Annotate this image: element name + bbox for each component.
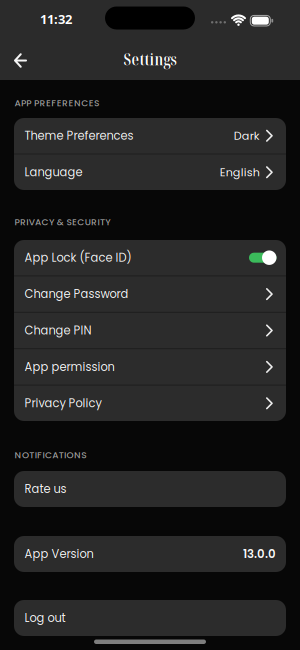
button[interactable]: Theme Preferences	[14, 118, 286, 153]
staticText: English	[220, 164, 260, 180]
staticText: Rate us	[24, 481, 66, 497]
staticText: Settings	[123, 49, 176, 70]
button[interactable]: Change PIN	[14, 313, 286, 348]
staticText: NOTIFICATIONS	[14, 449, 86, 461]
staticText: App Version	[24, 546, 93, 562]
staticText: App permission	[24, 359, 114, 375]
staticText: Dark	[234, 128, 260, 144]
button[interactable]: App Version	[14, 536, 286, 572]
button[interactable]: Back	[9, 48, 32, 73]
staticText: Theme Preferences	[24, 128, 133, 144]
staticText: Change PIN	[24, 322, 91, 339]
button[interactable]: Language	[14, 154, 286, 190]
button[interactable]: App permission	[14, 349, 286, 385]
staticText: APP PREFERENCES	[14, 97, 99, 109]
staticText: Change Password	[24, 286, 128, 302]
button[interactable]: Rate us	[14, 471, 286, 507]
staticText: PRIVACY & SECURITY	[14, 216, 110, 228]
button[interactable]: Change Password	[14, 276, 286, 312]
button[interactable]: Log out	[14, 600, 286, 636]
staticText: Privacy Policy	[24, 395, 101, 411]
staticText: Language	[24, 164, 82, 180]
staticText: 11:32	[40, 10, 72, 28]
staticText: 13.0.0	[243, 546, 276, 562]
button[interactable]: Privacy Policy	[14, 386, 286, 421]
staticText: App Lock (Face ID)	[24, 250, 131, 266]
button[interactable]: App Lock (Face ID)	[14, 240, 286, 275]
staticText: Log out	[24, 610, 65, 626]
